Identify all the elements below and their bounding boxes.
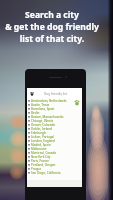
- staticText: Denver, Colorado: [31, 123, 56, 127]
- staticText: Barcelona, Spain: [31, 107, 55, 111]
- button[interactable]: Amsterdam, Netherlands: [27, 99, 82, 103]
- button[interactable]: Portland, Oregon: [27, 163, 82, 167]
- button[interactable]: App logo: [27, 88, 82, 99]
- staticText: New York City: [31, 155, 51, 159]
- button[interactable]: Barcelona, Spain: [27, 107, 82, 111]
- button[interactable]: Austin, Texas: [27, 103, 82, 107]
- button[interactable]: Lisbon, Portugal: [27, 135, 82, 139]
- button[interactable]: London, England: [27, 139, 82, 143]
- button[interactable]: Madrid, Spain: [27, 143, 82, 147]
- button[interactable]: Montreal, Canada: [27, 151, 82, 155]
- staticText: Melbourne: [31, 147, 47, 151]
- staticText: Amsterdam, Netherlands: [31, 99, 67, 103]
- staticText: Austin, Texas: [31, 103, 50, 107]
- staticText: San Diego, California: [31, 171, 61, 175]
- staticText: Portland, Oregon: [31, 163, 56, 167]
- staticText: London, England: [31, 139, 55, 143]
- staticText: Search a city & get the dog friendly lis…: [5, 9, 99, 45]
- button[interactable]: San Diego, California: [27, 171, 82, 175]
- button[interactable]: Paris, France: [27, 159, 82, 163]
- button[interactable]: Prague: [27, 167, 82, 171]
- staticText: Dog friendly list: [34, 92, 77, 96]
- staticText: Paris, France: [31, 159, 49, 163]
- staticText: Edinburgh: [31, 131, 46, 135]
- button[interactable]: Edinburgh: [27, 131, 82, 135]
- button[interactable]: Denver, Colorado: [27, 123, 82, 127]
- staticText: Prague: [31, 167, 42, 171]
- staticText: Boston, Massachusetts: [31, 115, 64, 119]
- button[interactable]: Chicago, Illinois: [27, 119, 82, 123]
- staticText: Dublin, Ireland: [31, 127, 52, 131]
- button[interactable]: Boston, Massachusetts: [27, 115, 82, 119]
- staticText: Berlin: [31, 111, 40, 115]
- button[interactable]: Dog friendly badge: [74, 100, 80, 106]
- staticText: Montreal, Canada: [31, 151, 57, 155]
- staticText: Lisbon, Portugal: [31, 135, 54, 139]
- button[interactable]: Dublin, Ireland: [27, 127, 82, 131]
- button[interactable]: Berlin: [27, 111, 82, 115]
- other: App logo: [30, 92, 34, 96]
- staticText: Chicago, Illinois: [31, 119, 54, 123]
- button[interactable]: New York City: [27, 155, 82, 159]
- staticText: Madrid, Spain: [31, 143, 51, 147]
- button[interactable]: Melbourne: [27, 147, 82, 151]
